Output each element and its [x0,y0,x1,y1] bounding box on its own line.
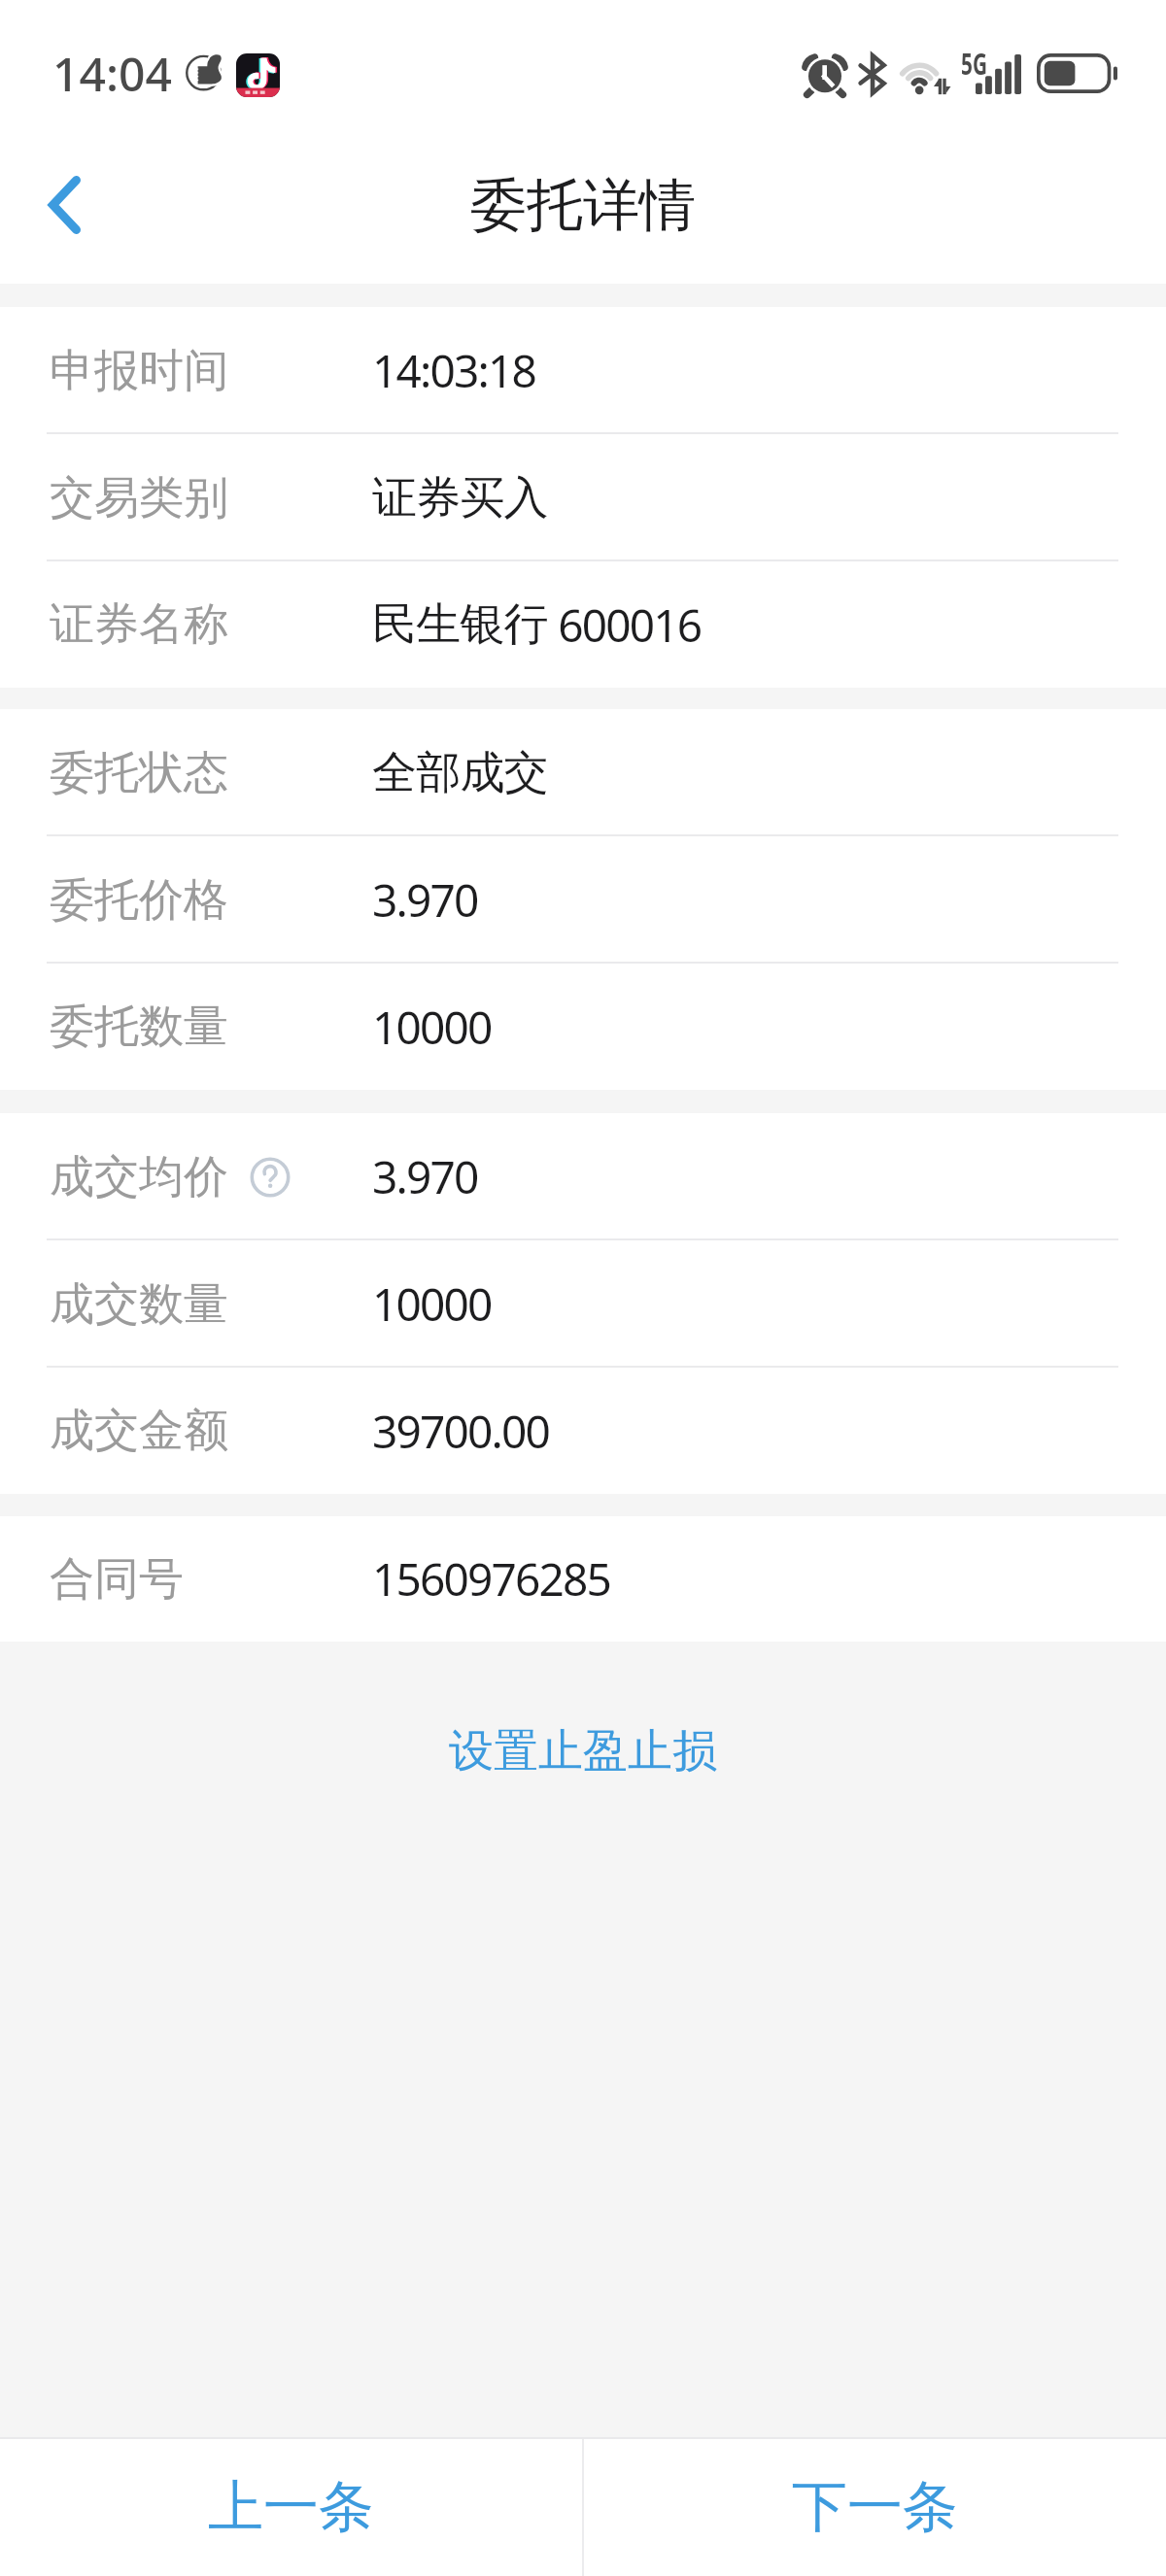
staticText: 成交数量 [50,1276,228,1333]
staticText: 14:04 [52,42,172,105]
staticText: 证券名称 [50,596,228,653]
staticText: 交易类别 [50,470,228,526]
staticText: 3.970 [372,1146,478,1207]
staticText: 委托状态 [50,745,228,801]
staticText: 39700.00 [372,1401,550,1462]
staticText: 申报时间 [50,343,228,399]
staticText: 上一条 [208,2472,374,2542]
staticText: 委托价格 [50,872,228,929]
staticText: 下一条 [792,2472,958,2542]
staticText: 3.970 [372,869,478,931]
staticText: 全部成交 [372,745,548,801]
button[interactable]: 设置止盈止损 [391,1694,775,1809]
staticText: 委托详情 [470,170,696,241]
staticText: 10000 [372,997,492,1058]
button[interactable]: 下一条 [584,2437,1166,2576]
staticText: 5G [961,43,988,84]
staticText: 设置止盈止损 [449,1723,717,1779]
staticText: 成交金额 [50,1403,228,1459]
button[interactable]: Help: average fill price [250,1157,291,1198]
button[interactable]: 上一条 [0,2437,582,2576]
staticText: 委托数量 [50,999,228,1055]
staticText: 合同号 [50,1551,184,1608]
staticText: 10000 [372,1273,492,1335]
staticText: 民生银行 [372,596,548,653]
staticText: 14:03:18 [372,340,536,401]
staticText: 1560976285 [372,1548,611,1610]
staticText: 600016 [548,594,702,656]
staticText: 证券买入 [372,470,548,526]
staticText: 成交均价 [50,1149,228,1205]
button[interactable]: Back [0,141,128,269]
